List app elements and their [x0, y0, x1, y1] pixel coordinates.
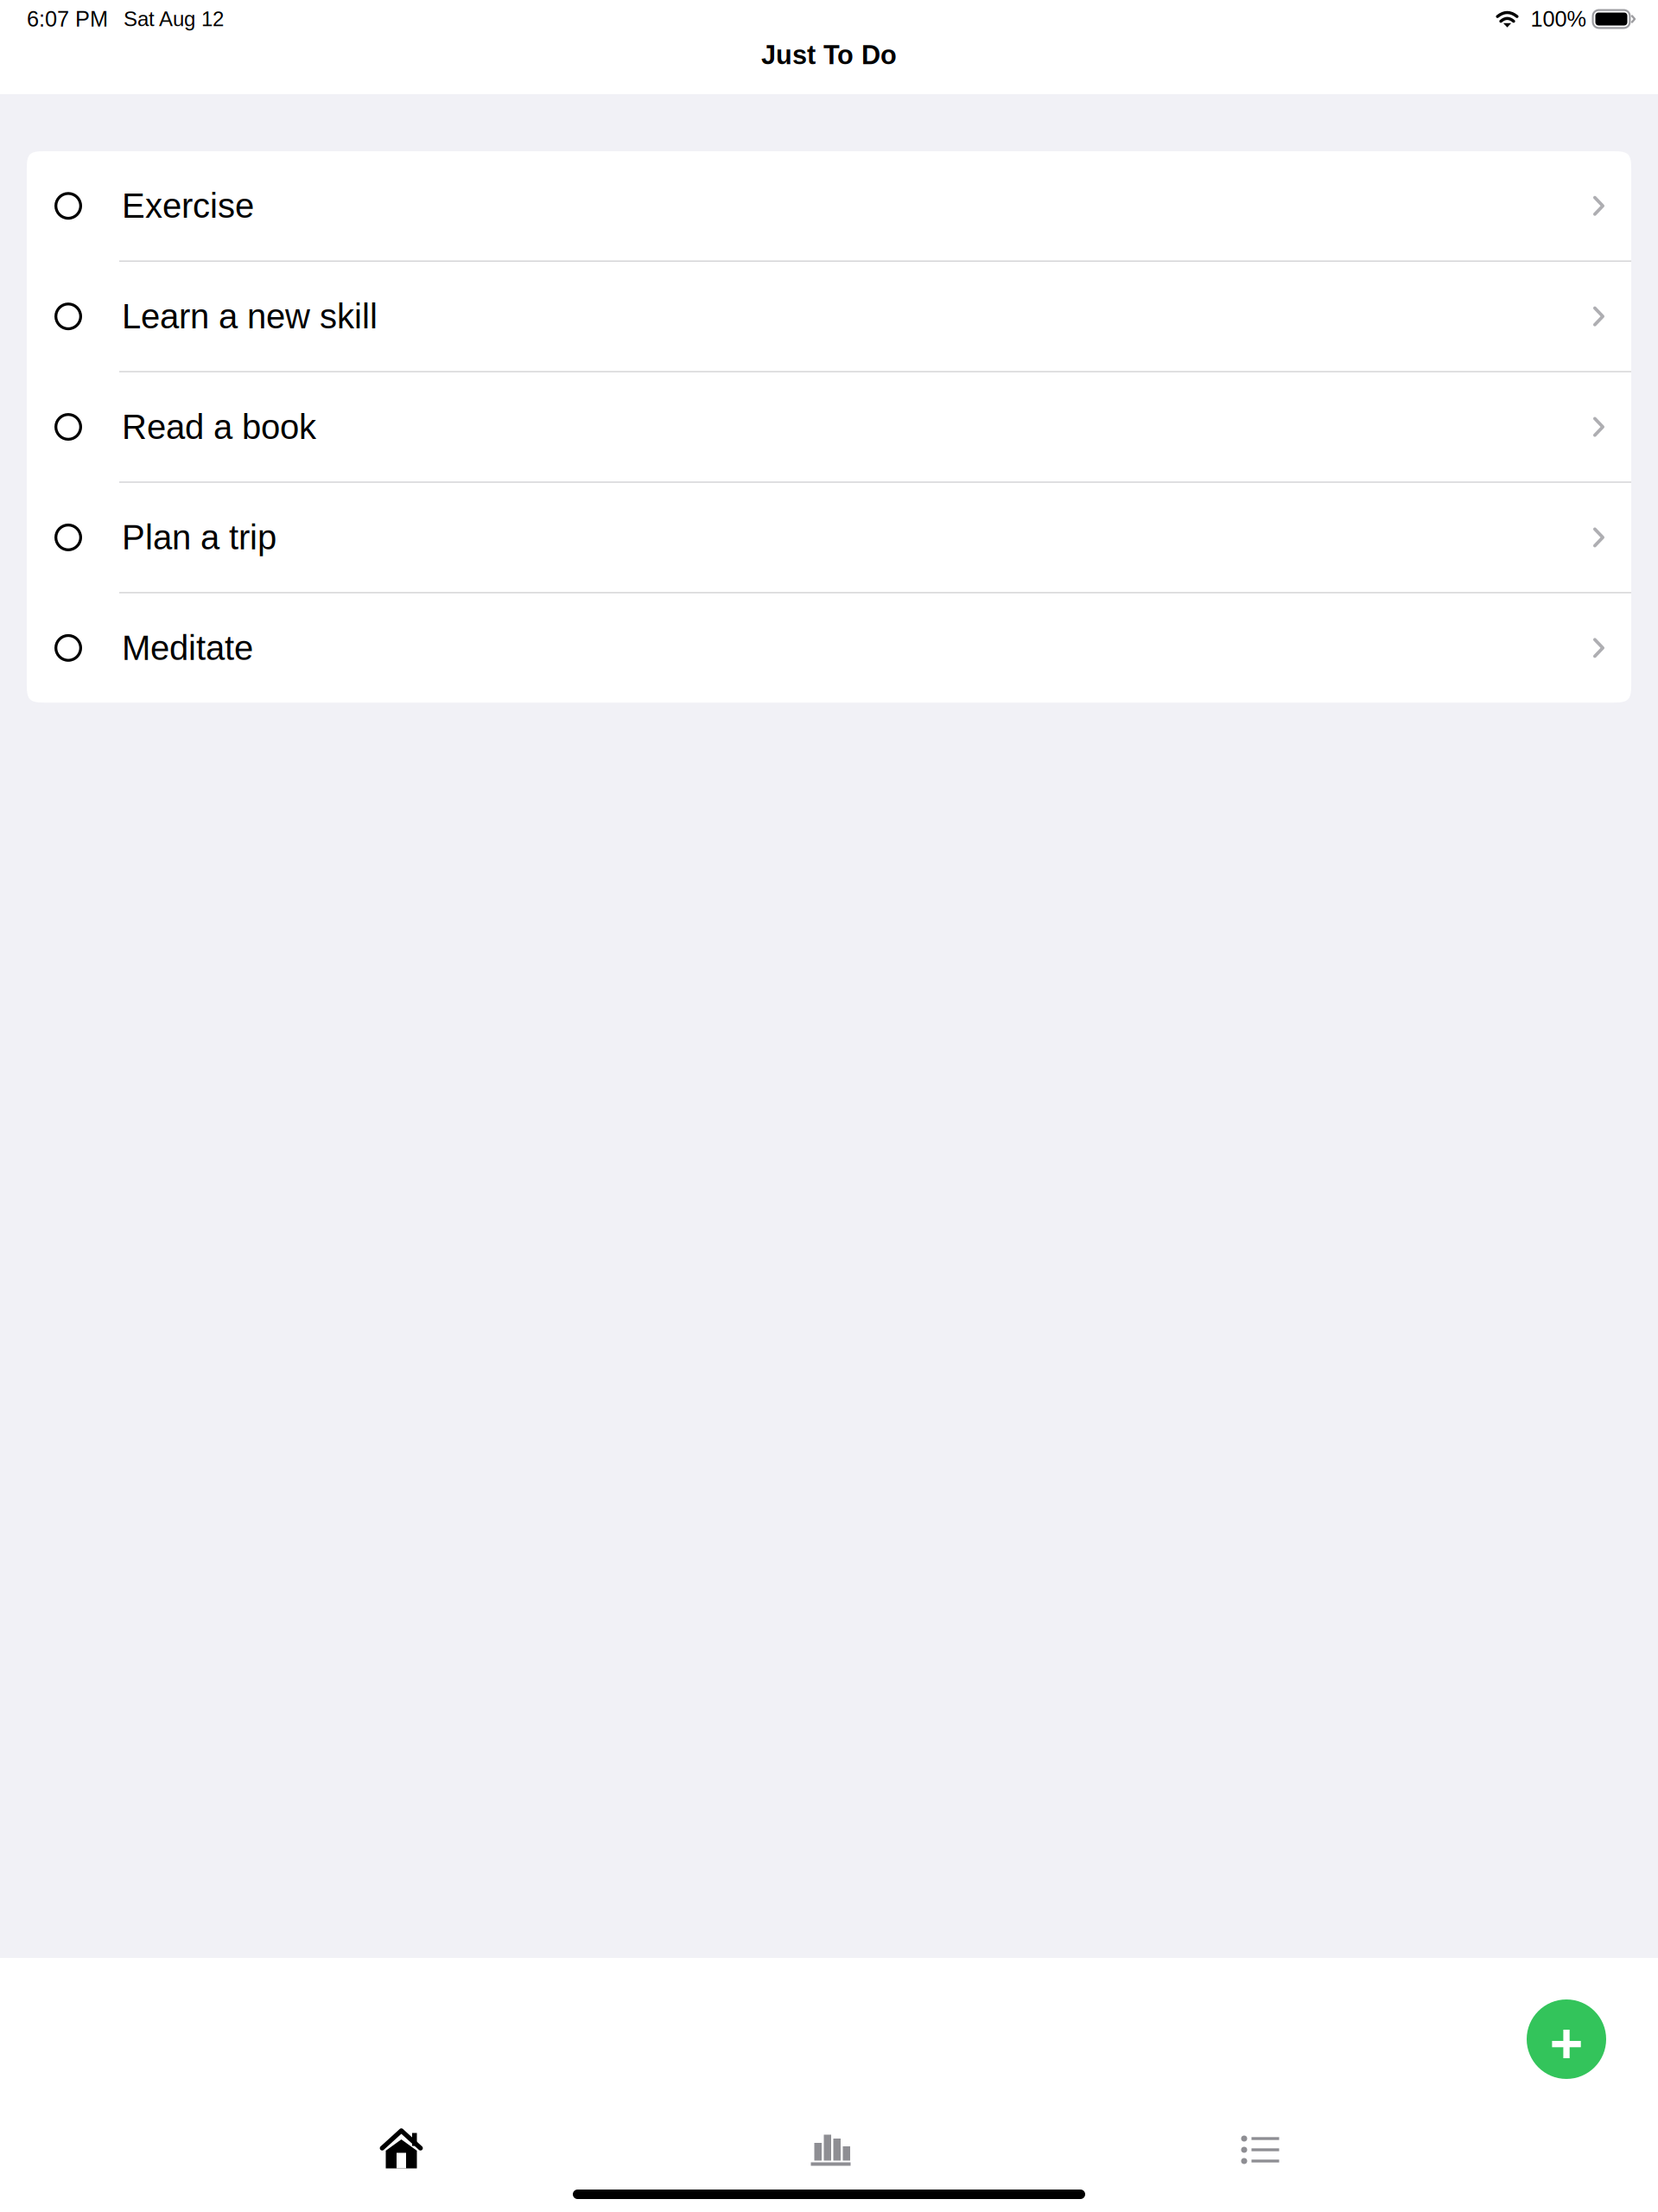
button[interactable]: Home	[187, 2126, 616, 2174]
staticText: Sat Aug 12	[124, 7, 224, 31]
staticText: Plan a trip	[122, 518, 276, 557]
staticText: Meditate	[122, 629, 253, 667]
staticText: Read a book	[122, 408, 316, 446]
button[interactable]: Plan a trip	[27, 483, 1631, 593]
staticText: 100%	[1531, 7, 1587, 31]
button[interactable]: Meditate	[27, 593, 1631, 703]
button[interactable]: Exercise	[27, 151, 1631, 262]
staticText: Exercise	[122, 187, 254, 225]
staticText: 6:07 PM	[27, 7, 108, 31]
staticText: Just To Do	[761, 40, 897, 70]
button[interactable]: Statistics	[616, 2126, 1045, 2174]
button[interactable]: Lists	[1045, 2126, 1475, 2174]
button[interactable]: Add task	[1527, 1999, 1606, 2080]
button[interactable]: Read a book	[27, 372, 1631, 483]
button[interactable]: Learn a new skill	[27, 262, 1631, 372]
staticText: Learn a new skill	[122, 297, 378, 336]
